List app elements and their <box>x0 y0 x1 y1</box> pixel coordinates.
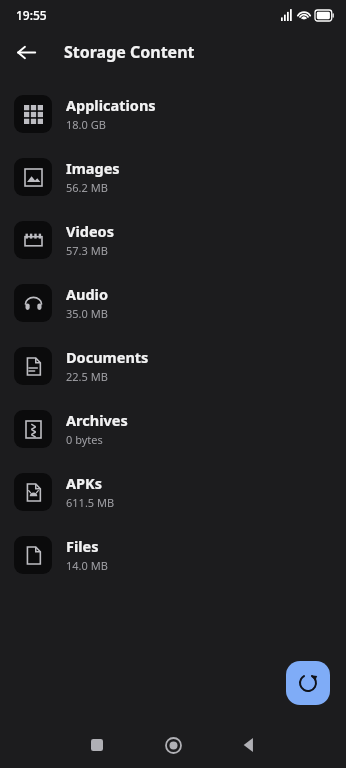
button[interactable]: Documents <box>0 334 346 397</box>
button[interactable]: Applications <box>0 82 346 145</box>
button[interactable]: Back <box>232 728 266 762</box>
staticText: 14.0 MB <box>66 558 108 573</box>
staticText: 35.0 MB <box>66 306 108 321</box>
staticText: APKs <box>66 473 102 493</box>
staticText: Archives <box>66 410 128 430</box>
button[interactable]: APKs <box>0 460 346 523</box>
staticText: Files <box>66 536 99 556</box>
button[interactable]: Recents <box>80 728 114 762</box>
button[interactable]: Videos <box>0 208 346 271</box>
button[interactable]: Home <box>156 728 190 762</box>
staticText: 19:55 <box>16 7 47 23</box>
staticText: 0 bytes <box>66 432 103 447</box>
staticText: Applications <box>66 95 156 115</box>
staticText: Documents <box>66 347 149 367</box>
button[interactable]: Audio <box>0 271 346 334</box>
staticText: 611.5 MB <box>66 495 115 510</box>
button[interactable]: Files <box>0 523 346 586</box>
button[interactable]: Back <box>8 34 44 70</box>
staticText: 57.3 MB <box>66 243 108 258</box>
staticText: Storage Content <box>64 41 195 63</box>
staticText: 22.5 MB <box>66 369 108 384</box>
staticText: Videos <box>66 221 114 241</box>
staticText: Images <box>66 158 120 178</box>
button[interactable]: Images <box>0 145 346 208</box>
button[interactable]: Archives <box>0 397 346 460</box>
button[interactable]: Refresh <box>286 661 330 705</box>
staticText: 18.0 GB <box>66 117 106 132</box>
staticText: Audio <box>66 284 109 304</box>
staticText: 56.2 MB <box>66 180 108 195</box>
